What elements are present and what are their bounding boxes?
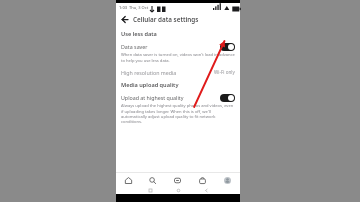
- staticText: Thu, 3 Oct: [129, 5, 149, 10]
- button[interactable]: Data saver: [121, 41, 235, 52]
- staticText: Data saver: [121, 43, 220, 50]
- button[interactable]: Recents: [148, 188, 153, 193]
- button[interactable]: High resolution media: [121, 67, 235, 77]
- staticText: When data saver is turned on, videos won…: [121, 52, 235, 63]
- staticText: Always upload the highest quality photos…: [121, 103, 235, 124]
- button[interactable]: Back: [119, 14, 130, 25]
- button[interactable]: Profile: [215, 173, 240, 187]
- staticText: Use less data: [121, 30, 157, 38]
- button[interactable]: Home: [176, 188, 181, 193]
- staticText: Upload at highest quality: [121, 94, 220, 101]
- button[interactable]: Search: [140, 173, 165, 187]
- staticText: High resolution media: [121, 69, 214, 76]
- button[interactable]: Back: [204, 188, 209, 193]
- staticText: Media upload quality: [121, 81, 179, 89]
- button[interactable]: Reels: [165, 173, 190, 187]
- staticText: Wi-Fi only: [214, 69, 235, 75]
- staticText: 1:03: [119, 5, 127, 10]
- button[interactable]: Shop: [190, 173, 215, 187]
- staticText: Cellular data settings: [133, 15, 199, 24]
- button[interactable]: Home: [116, 173, 140, 187]
- button[interactable]: Upload at highest quality: [121, 92, 235, 103]
